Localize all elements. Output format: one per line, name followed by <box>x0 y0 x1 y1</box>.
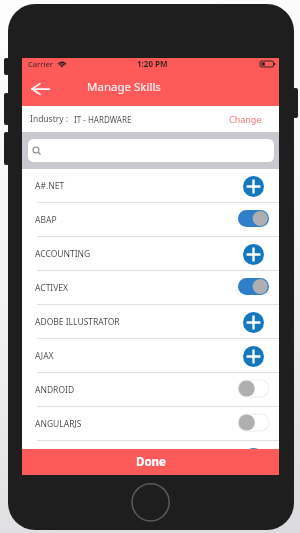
other: Disabled <box>238 380 269 397</box>
staticText: ANDROID <box>35 384 75 396</box>
other: Add skill <box>243 448 264 469</box>
button[interactable]: Search <box>28 139 274 162</box>
other: Enabled <box>238 210 269 227</box>
staticText: Done <box>136 454 166 470</box>
staticText: Carrier <box>28 59 53 69</box>
button[interactable]: ADOBE ILLUSTRATOR <box>22 305 279 339</box>
staticText: 1:20 PM <box>137 58 168 69</box>
button[interactable]: A#.NET <box>22 169 279 203</box>
staticText: IT - HARDWARE <box>74 114 132 125</box>
other: Add skill <box>243 312 264 333</box>
other: Add skill <box>243 346 264 367</box>
staticText: ADOBE ILLUSTRATOR <box>35 316 120 328</box>
button[interactable]: Change <box>229 113 262 125</box>
other: Add skill <box>243 176 264 197</box>
staticText: Change <box>229 113 262 125</box>
staticText: ABAP <box>35 214 57 226</box>
button[interactable]: AJAX <box>22 339 279 373</box>
button[interactable]: Done <box>22 449 279 475</box>
staticText: AJAX <box>35 350 54 362</box>
other: Disabled <box>238 414 269 431</box>
staticText: A#.NET <box>35 180 65 192</box>
staticText: ANGULARJS <box>35 418 82 430</box>
staticText: Manage Skills <box>87 79 161 95</box>
other: Add skill <box>243 244 264 265</box>
staticText: Industry : <box>30 113 69 125</box>
staticText: ACTIVEX <box>35 282 69 294</box>
button[interactable]: Back <box>26 74 54 104</box>
button[interactable]: ANIMATION <box>22 441 279 475</box>
button[interactable]: ACTIVEX <box>22 271 279 305</box>
button[interactable]: ANDROID <box>22 373 279 407</box>
button[interactable]: ABAP <box>22 203 279 237</box>
staticText: ACCOUNTING <box>35 248 91 260</box>
other: Enabled <box>238 278 269 295</box>
button[interactable]: ACCOUNTING <box>22 237 279 271</box>
button[interactable]: ANGULARJS <box>22 407 279 441</box>
